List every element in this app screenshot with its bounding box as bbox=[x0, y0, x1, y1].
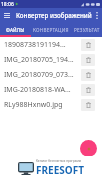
staticText: РЕЗУЛЬТАТ bbox=[74, 27, 100, 33]
button[interactable]: RLy988Hxnw0.jpg bbox=[0, 97, 102, 112]
staticText: Каталог бесплатных программ bbox=[36, 159, 81, 163]
button[interactable]: РЕЗУЛЬТАТ bbox=[71, 22, 102, 37]
button[interactable]: Каталог бесплатных программ bbox=[0, 156, 102, 180]
staticText: FREESOFT bbox=[36, 163, 84, 177]
staticText: КОНВЕРТАЦИЯ bbox=[33, 27, 69, 33]
staticText: RLy988Hxnw0.jpg bbox=[4, 100, 81, 110]
staticText: ФАЙЛЫ bbox=[6, 27, 25, 33]
button[interactable]: Delete bbox=[81, 54, 95, 66]
button[interactable]: 18908738191194... bbox=[0, 37, 102, 52]
button[interactable]: IMG-20180818-WA... bbox=[0, 82, 102, 97]
button[interactable]: More options bbox=[92, 9, 102, 21]
staticText: IMG_20180709_073... bbox=[4, 70, 81, 80]
button[interactable]: КОНВЕРТАЦИЯ bbox=[31, 22, 71, 37]
staticText: Конвертер изображений bbox=[16, 11, 92, 19]
button[interactable]: IMG_20180705_194... bbox=[0, 52, 102, 67]
staticText: IMG-20180818-WA... bbox=[4, 85, 81, 95]
button[interactable]: IMG_20180709_073... bbox=[0, 67, 102, 82]
staticText: IMG_20180705_194... bbox=[4, 55, 81, 65]
staticText: 18908738191194... bbox=[4, 40, 81, 50]
button[interactable]: Delete bbox=[81, 69, 95, 81]
staticText: 18:06 bbox=[1, 1, 14, 8]
button[interactable]: Add files bbox=[80, 140, 97, 157]
button[interactable]: Delete bbox=[81, 39, 95, 51]
button[interactable]: Delete bbox=[81, 99, 95, 111]
button[interactable]: Delete bbox=[81, 84, 95, 96]
button[interactable]: Menu bbox=[0, 8, 14, 22]
button[interactable]: ФАЙЛЫ bbox=[0, 22, 31, 37]
